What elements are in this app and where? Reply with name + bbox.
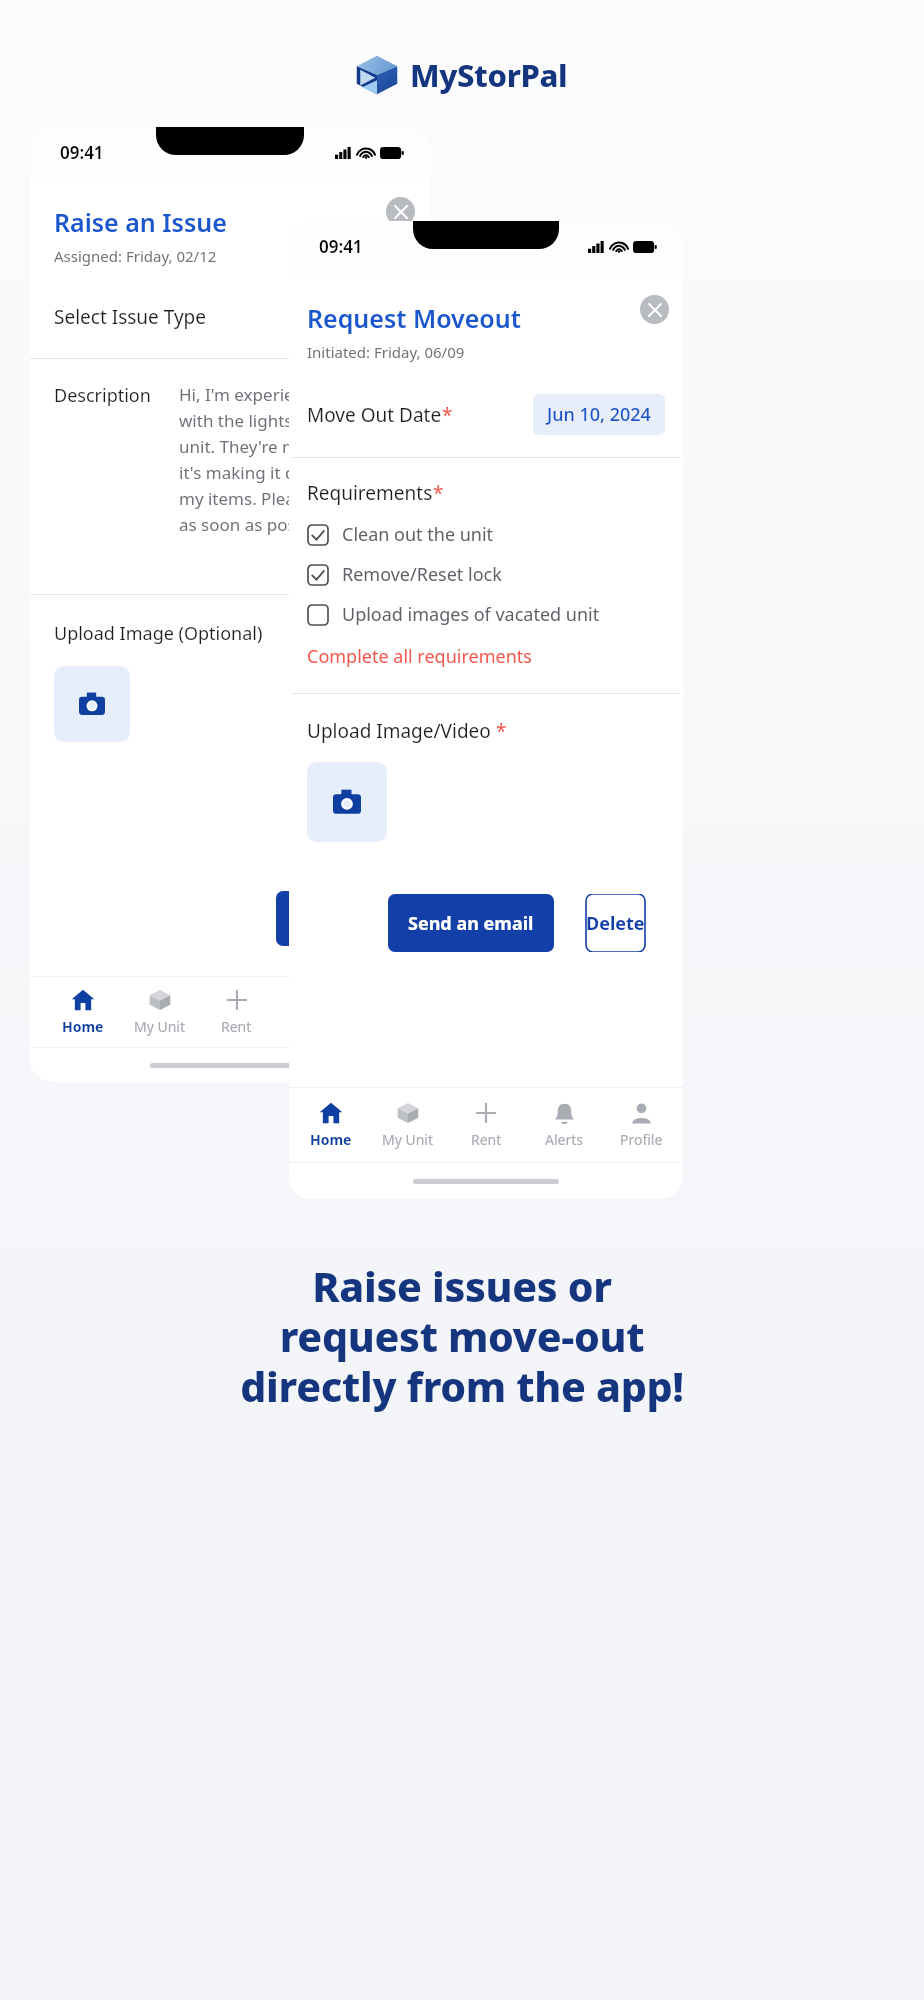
button[interactable]: My Unit xyxy=(372,1097,444,1153)
button[interactable]: Upload images of vacated unit xyxy=(307,602,665,627)
button[interactable]: Profile xyxy=(605,1098,677,1153)
staticText: Description xyxy=(54,383,151,408)
button[interactable]: Close xyxy=(386,197,415,226)
button[interactable]: Alerts xyxy=(528,1098,600,1153)
button[interactable]: Home xyxy=(44,984,121,1040)
staticText: Raise issues or request move-out directl… xyxy=(240,1258,684,1414)
staticText: * xyxy=(433,480,444,506)
staticText: My Unit xyxy=(134,1017,186,1036)
staticText: Move Out Date xyxy=(307,402,442,428)
button[interactable]: Delete xyxy=(566,894,665,952)
button[interactable]: Clean out the unit xyxy=(307,522,665,547)
staticText: 09:41 xyxy=(60,141,104,164)
button[interactable]: Remove/Reset lock xyxy=(307,562,665,587)
staticText: Assigned: Friday, 02/12 xyxy=(54,246,217,266)
button[interactable]: Close xyxy=(640,295,669,324)
staticText: Send an email xyxy=(408,911,534,936)
staticText: Raise an Issue xyxy=(54,205,227,239)
staticText: * xyxy=(496,718,507,744)
staticText: Rent xyxy=(221,1017,252,1036)
staticText: Requirements xyxy=(307,480,433,506)
staticText: Request Moveout xyxy=(307,301,521,335)
staticText: Home xyxy=(310,1130,352,1149)
button[interactable]: Move Out Date xyxy=(307,394,665,435)
staticText: Remove/Reset lock xyxy=(342,562,502,587)
staticText: My Unit xyxy=(382,1130,434,1149)
button[interactable]: Send an email xyxy=(388,894,554,952)
staticText: Alerts xyxy=(545,1130,583,1149)
staticText: Send an em xyxy=(289,906,393,931)
button[interactable]: Rent xyxy=(198,984,275,1040)
staticText: Initiated: Friday, 06/09 xyxy=(307,342,465,362)
staticText: Upload Image (Optional) xyxy=(54,621,263,646)
button[interactable]: My Unit xyxy=(121,984,198,1040)
staticText: Upload Image/Video xyxy=(307,718,491,744)
button[interactable]: Rent xyxy=(450,1097,522,1153)
staticText: MyStorPal xyxy=(410,54,568,96)
staticText: Upload images of vacated unit xyxy=(342,602,600,627)
button[interactable]: Home xyxy=(295,1097,367,1153)
button[interactable]: Upload image xyxy=(54,666,130,742)
staticText: Home xyxy=(62,1017,104,1036)
staticText: Hi, I'm experiencing with the lights in … xyxy=(179,383,338,536)
staticText: * xyxy=(442,402,453,428)
staticText: Select Issue Type xyxy=(54,304,207,330)
staticText: Profile xyxy=(620,1130,663,1149)
staticText: Complete all requirements xyxy=(307,644,532,669)
staticText: Clean out the unit xyxy=(342,522,494,547)
staticText: Delete xyxy=(586,911,645,936)
staticText: 09:41 xyxy=(319,235,363,258)
staticText: Jun 10, 2024 xyxy=(547,402,651,427)
button[interactable]: Upload image xyxy=(307,762,387,842)
staticText: Rent xyxy=(471,1130,502,1149)
button[interactable]: Send an em xyxy=(276,891,406,946)
